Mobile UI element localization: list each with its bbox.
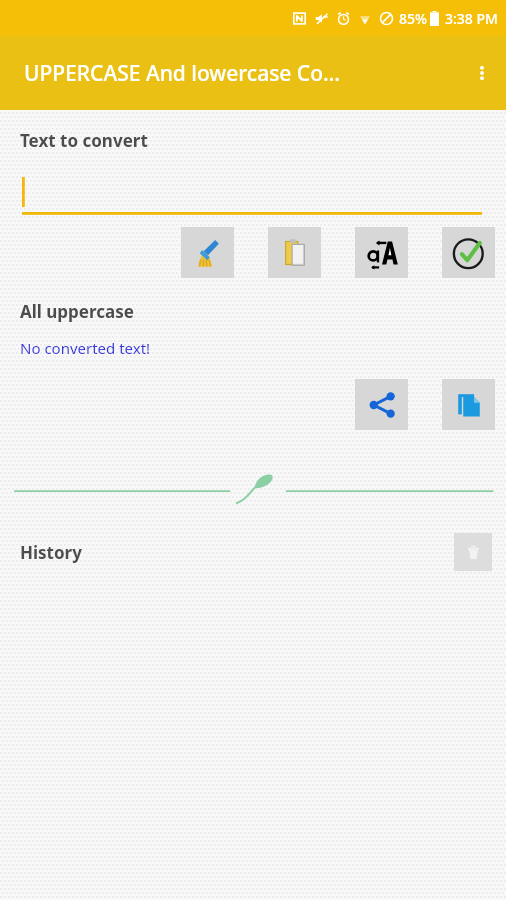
staticText: 3:38 PM — [445, 9, 498, 28]
staticText: History — [20, 541, 82, 564]
staticText: No converted text! — [20, 338, 151, 358]
staticText: 85% — [399, 9, 427, 28]
button[interactable]: Paste — [268, 227, 321, 278]
button[interactable]: Copy — [442, 379, 495, 430]
staticText: All uppercase — [20, 300, 134, 323]
button[interactable]: Clear history — [454, 533, 492, 571]
staticText: UPPERCASE And lowercase Co… — [24, 59, 341, 88]
button[interactable]: Confirm — [442, 227, 495, 278]
staticText: Text to convert — [20, 129, 148, 152]
button[interactable]: Toggle case — [355, 227, 408, 278]
button[interactable]: More options — [458, 49, 506, 97]
button[interactable]: Share — [355, 379, 408, 430]
button[interactable]: Clear text — [181, 227, 234, 278]
button[interactable] — [22, 176, 482, 216]
